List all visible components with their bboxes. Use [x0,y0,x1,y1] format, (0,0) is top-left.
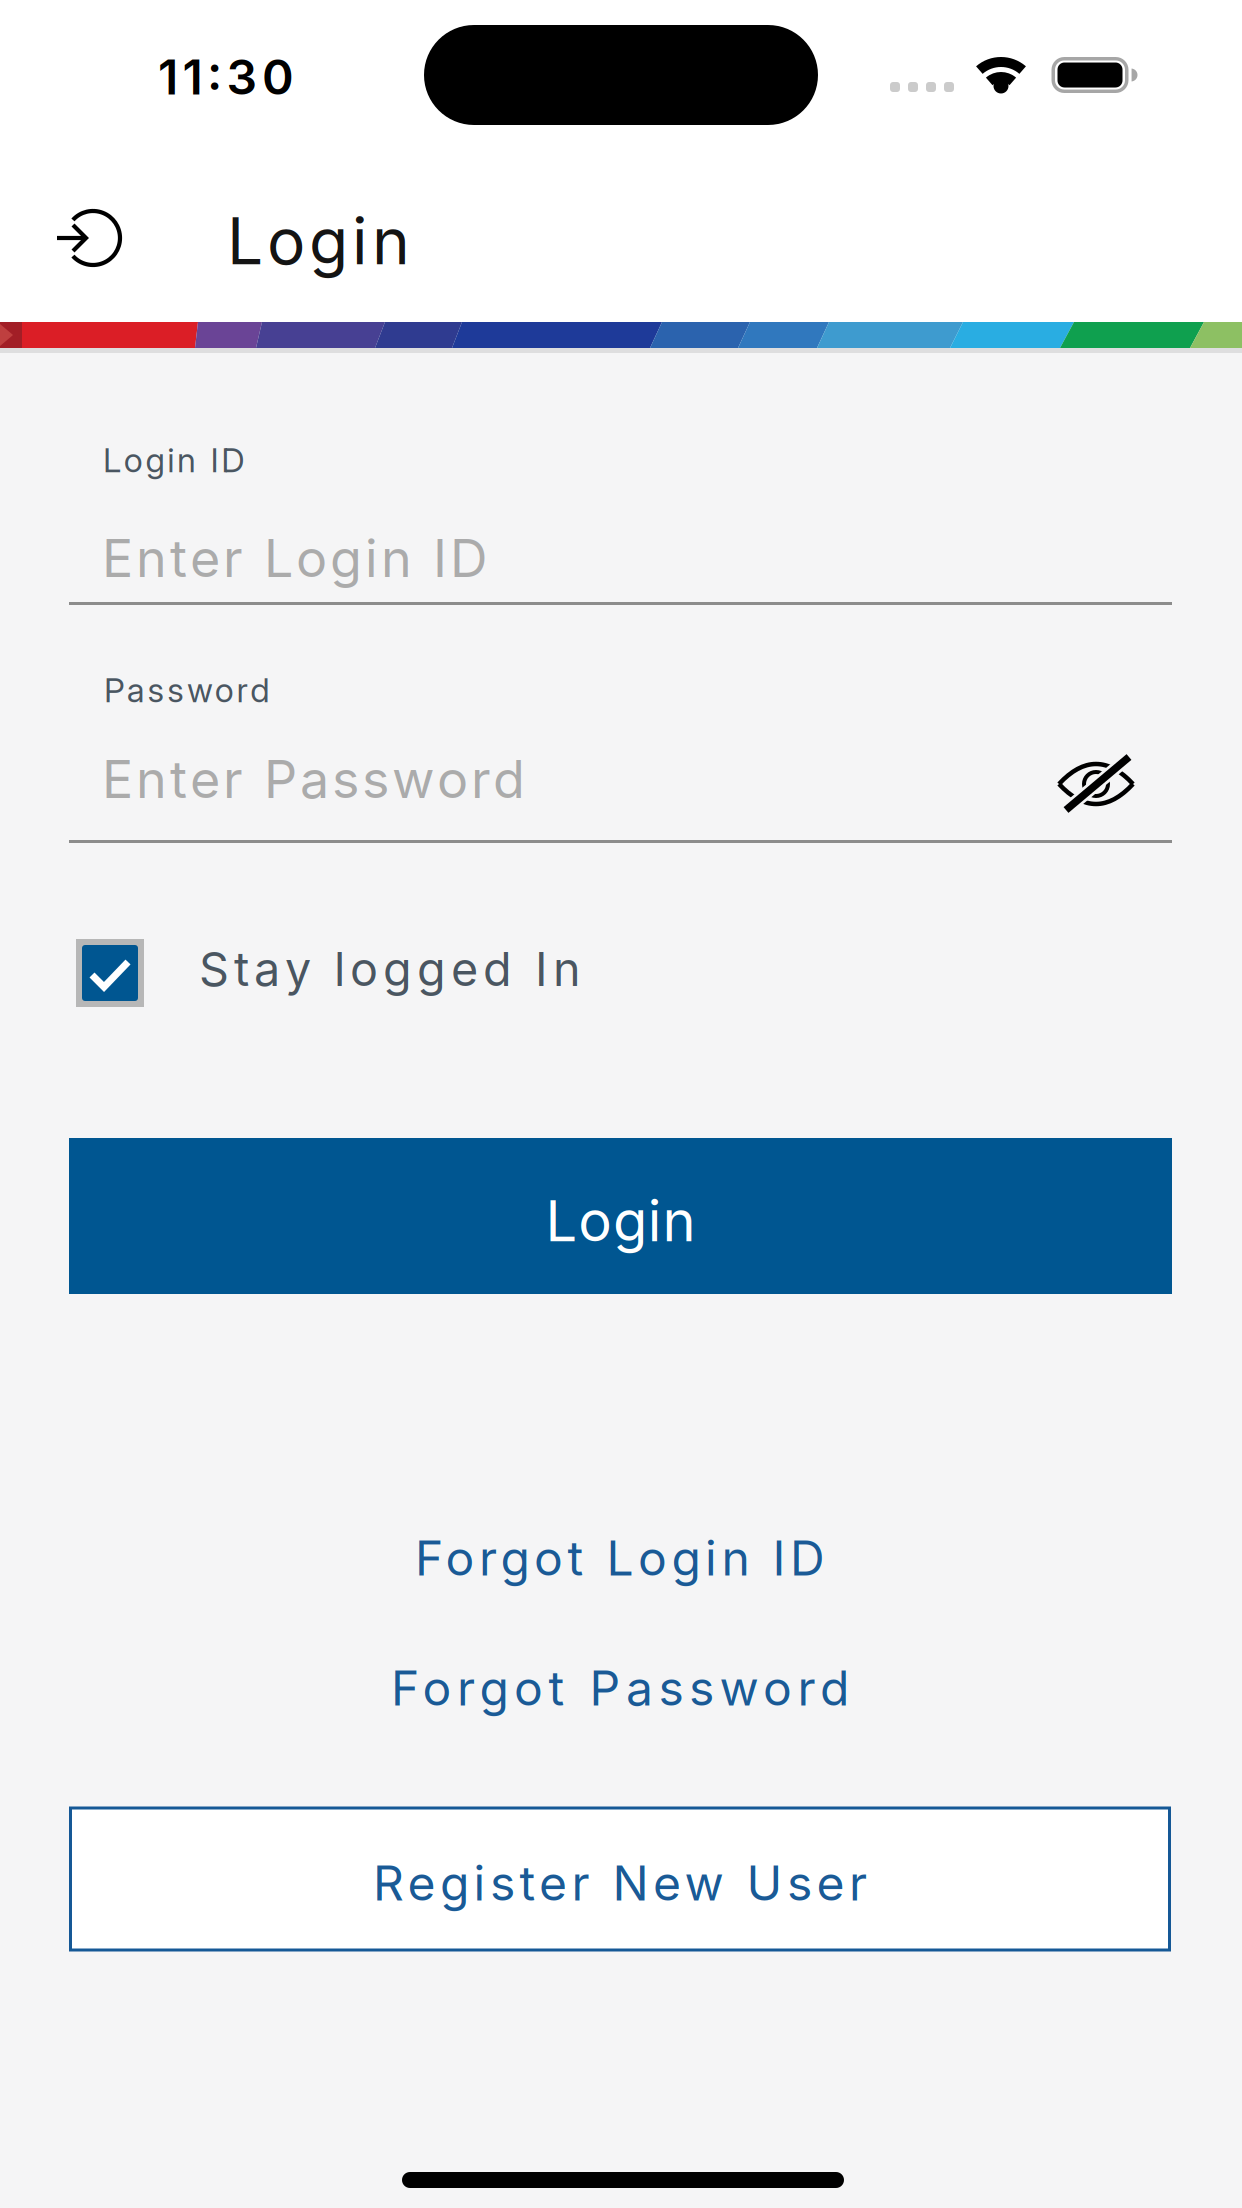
staticText: Login ID [103,440,244,480]
staticText: 11:30 [158,49,294,105]
staticText: Register New User [373,1855,867,1911]
staticText: Login [227,203,410,279]
staticText: Login [545,1188,695,1254]
staticText: Enter Login ID [102,527,488,589]
button[interactable]: Login [69,1138,1172,1294]
button[interactable] [56,202,130,274]
staticText: Stay logged In [199,941,581,997]
button[interactable] [1051,739,1141,829]
button[interactable]: Forgot Login ID [415,1530,825,1586]
staticText: Enter Password [102,748,525,810]
button[interactable]: Stay logged In [76,933,776,1013]
staticText: Forgot Password [391,1660,849,1716]
button[interactable]: Register New User [69,1806,1171,1951]
staticText: Forgot Login ID [415,1530,825,1586]
staticText: Password [104,670,269,710]
button[interactable]: Forgot Password [391,1660,849,1716]
